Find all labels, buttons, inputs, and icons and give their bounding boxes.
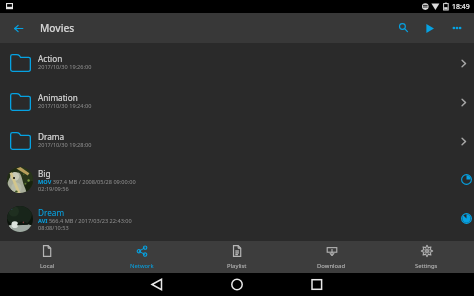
- staticText: 02:19/09:56: [38, 185, 69, 193]
- button[interactable]: Dream: [0, 201, 474, 240]
- staticText: 2017/10/30 19:26:00: [38, 63, 92, 71]
- button[interactable]: Action: [0, 45, 474, 84]
- staticText: MOV 397.4 MB / 2008/05/28 09:00:00: [38, 178, 136, 186]
- staticText: Action: [38, 53, 63, 64]
- button[interactable]: Back: [5, 13, 31, 43]
- staticText: Movies: [40, 21, 75, 35]
- button[interactable]: Big: [0, 162, 474, 201]
- staticText: Animation: [38, 92, 78, 103]
- staticText: 2017/10/30 19:28:00: [38, 141, 92, 149]
- button[interactable]: Network: [94, 241, 189, 273]
- staticText: Network: [130, 262, 154, 270]
- button[interactable]: Drama: [0, 123, 474, 162]
- staticText: Local: [40, 262, 55, 270]
- button[interactable]: Local: [0, 241, 94, 273]
- button[interactable]: Settings: [379, 241, 474, 273]
- button[interactable]: More options: [444, 13, 470, 43]
- staticText: 18:49: [452, 2, 470, 11]
- staticText: Playlist: [227, 262, 247, 270]
- button[interactable]: Download: [284, 241, 379, 273]
- staticText: 08:08/10:53: [38, 224, 69, 232]
- staticText: Dream: [38, 207, 65, 218]
- button[interactable]: Movies: [40, 21, 75, 35]
- staticText: AVI 566.4 MB / 2017/03/23 22:43:00: [38, 217, 132, 225]
- button[interactable]: Animation: [0, 84, 474, 123]
- staticText: Settings: [415, 262, 438, 270]
- staticText: Big: [38, 168, 51, 179]
- staticText: Download: [317, 262, 346, 270]
- staticText: Drama: [38, 131, 65, 142]
- staticText: 2017/10/30 19:24:00: [38, 102, 92, 110]
- button[interactable]: Playlist: [189, 241, 284, 273]
- button[interactable]: Search: [390, 12, 416, 42]
- button[interactable]: Play: [417, 13, 443, 43]
